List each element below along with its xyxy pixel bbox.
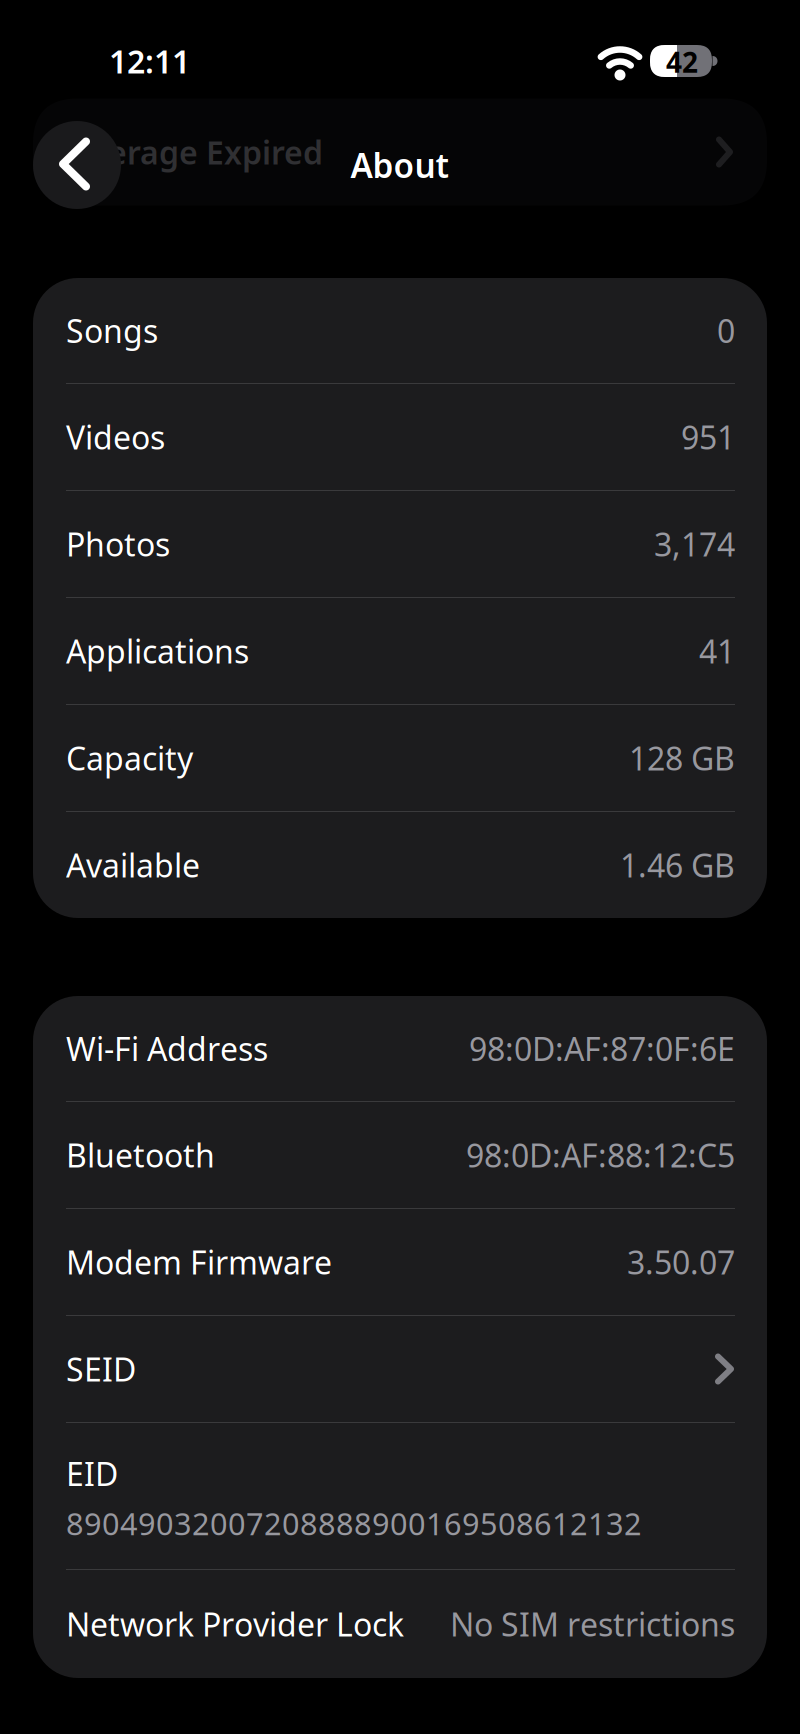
staticText: Modem Firmware (66, 1241, 332, 1283)
staticText: 98:0D:AF:87:0F:6E (469, 1027, 735, 1070)
staticText: EID (66, 1452, 118, 1495)
staticText: 12:11 (109, 40, 190, 82)
button[interactable]: Back (33, 121, 121, 209)
staticText: Bluetooth (66, 1134, 215, 1176)
staticText: Applications (66, 630, 249, 672)
staticText: 3,174 (654, 523, 735, 565)
staticText: 951 (681, 416, 735, 458)
staticText: 89049032007208888900169508612132 (66, 1503, 642, 1544)
staticText: Available (66, 844, 200, 886)
staticText: 41 (699, 630, 735, 672)
staticText: SEID (66, 1348, 136, 1390)
staticText: 3.50.07 (627, 1241, 735, 1283)
staticText: 128 GB (629, 737, 735, 779)
staticText: Songs (66, 309, 158, 352)
button[interactable]: SEID (33, 1316, 767, 1422)
staticText: Wi-Fi Address (66, 1027, 268, 1070)
staticText: 42 (666, 43, 698, 81)
staticText: Photos (66, 523, 170, 565)
staticText: 98:0D:AF:88:12:C5 (466, 1134, 735, 1176)
staticText: About (350, 143, 449, 187)
staticText: 0 (717, 309, 735, 352)
staticText: Capacity (66, 737, 193, 779)
staticText: Videos (66, 416, 165, 458)
staticText: No SIM restrictions (450, 1603, 735, 1645)
staticText: 1.46 GB (620, 844, 735, 886)
staticText: Network Provider Lock (66, 1603, 404, 1645)
staticText: erage Expired (108, 131, 323, 173)
